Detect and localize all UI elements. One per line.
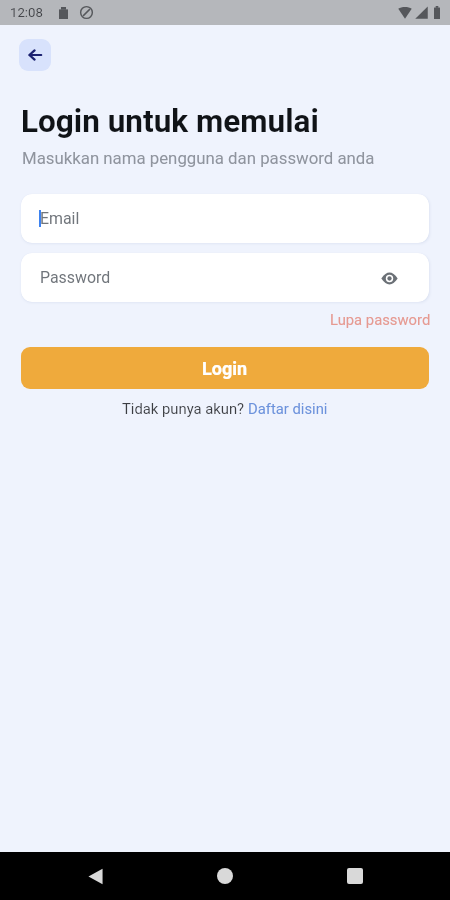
staticText: Login untuk memulai (21, 103, 319, 140)
staticText: Password (40, 268, 111, 287)
button[interactable]: Back (78, 859, 112, 893)
staticText: Masukkan nama pengguna dan password anda (22, 148, 375, 168)
button[interactable]: Home (208, 859, 242, 893)
button[interactable]: Daftar disini (248, 400, 328, 417)
staticText: Email (40, 209, 80, 228)
button[interactable]: Password (21, 253, 429, 302)
button[interactable]: Lupa password (330, 311, 431, 328)
staticText: 12:08 (10, 5, 43, 20)
button[interactable]: Show password (377, 266, 401, 290)
button[interactable]: Login (21, 347, 429, 389)
staticText: Login (202, 358, 248, 379)
staticText: Tidak punya akun? (122, 400, 248, 417)
button[interactable]: Recent apps (338, 859, 372, 893)
button[interactable]: Back (19, 39, 51, 71)
button[interactable]: Email (21, 194, 429, 243)
